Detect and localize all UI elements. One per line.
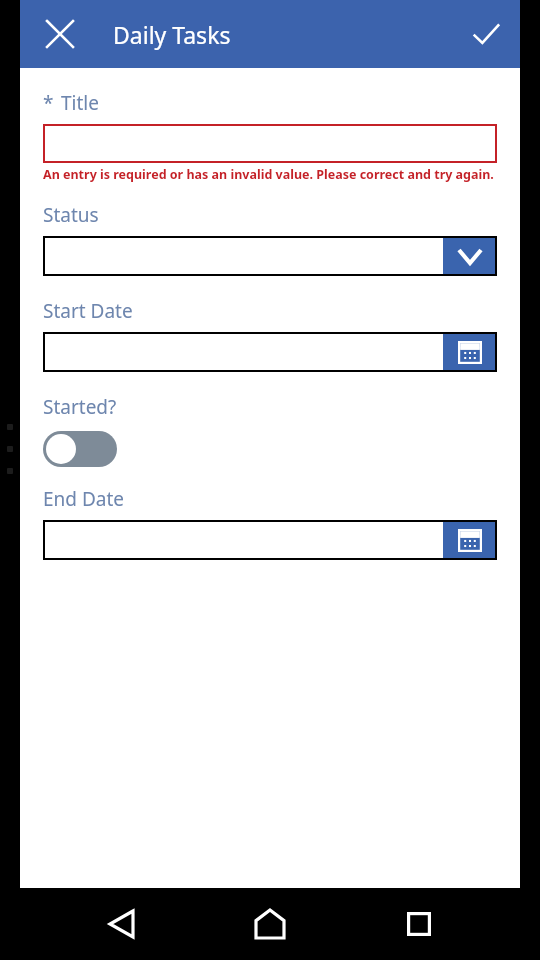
button[interactable]: Started toggle, off	[43, 431, 117, 467]
button[interactable]: Back	[93, 896, 149, 952]
staticText: Started?	[43, 394, 117, 420]
button[interactable]: Recent apps	[391, 896, 447, 952]
staticText: *	[43, 90, 54, 116]
button[interactable]: Save	[462, 10, 510, 58]
staticText: Status	[43, 202, 99, 228]
button[interactable]	[43, 124, 497, 163]
staticText: An entry is required or has an invalid v…	[43, 166, 494, 183]
staticText: Start Date	[43, 298, 133, 324]
staticText: Title	[61, 90, 99, 116]
button[interactable]	[43, 520, 443, 560]
button[interactable]	[43, 332, 443, 372]
button[interactable]: Pick start date	[443, 332, 497, 372]
button[interactable]: Open status list	[443, 236, 497, 276]
button[interactable]: Close	[36, 10, 84, 58]
button[interactable]: Home	[242, 896, 298, 952]
staticText: End Date	[43, 486, 125, 512]
button[interactable]: Pick end date	[443, 520, 497, 560]
staticText: Daily Tasks	[113, 19, 231, 50]
button[interactable]	[43, 236, 443, 276]
